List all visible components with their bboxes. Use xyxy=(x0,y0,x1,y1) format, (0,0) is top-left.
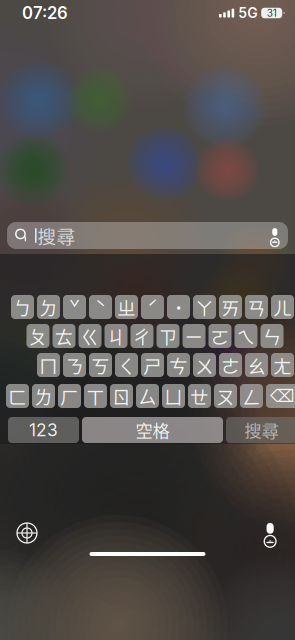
staticText: ㄈ xyxy=(8,382,27,409)
button[interactable]: ㄗ xyxy=(156,324,179,348)
button[interactable]: 空格 xyxy=(82,417,223,443)
button[interactable]: ㄉ xyxy=(37,295,60,319)
staticText: ㄓ xyxy=(117,293,136,320)
button[interactable]: ㄡ xyxy=(214,384,237,408)
button[interactable]: ㄅ xyxy=(11,295,34,319)
button[interactable]: ㄨ xyxy=(193,353,216,377)
staticText: 搜尋 xyxy=(38,222,76,249)
button[interactable]: ㄜ xyxy=(219,353,242,377)
staticText: ˊ xyxy=(147,293,158,320)
button[interactable]: ˋ xyxy=(89,295,112,319)
staticText: ㄤ xyxy=(273,351,292,378)
button[interactable]: ㄘ xyxy=(167,353,190,377)
button[interactable]: 搜尋 xyxy=(226,417,295,443)
button[interactable]: ㄐ xyxy=(104,324,127,348)
staticText: ㄔ xyxy=(132,322,151,349)
button[interactable]: ㄢ xyxy=(245,295,268,319)
button[interactable]: ㄎ xyxy=(89,353,112,377)
staticText: ˇ xyxy=(69,293,80,320)
button[interactable]: ㄒ xyxy=(84,384,107,408)
staticText: ㄉ xyxy=(39,293,58,320)
staticText: ㄏ xyxy=(60,382,79,409)
button[interactable]: ㄕ xyxy=(141,353,164,377)
button[interactable]: ㄈ xyxy=(6,384,29,408)
staticText: ㄕ xyxy=(143,351,162,378)
button[interactable]: ㄛ xyxy=(208,324,231,348)
button[interactable]: ㄑ xyxy=(115,353,138,377)
staticText: ㄨ xyxy=(195,351,214,378)
staticText: ㄖ xyxy=(112,382,131,409)
button[interactable]: ㄋ xyxy=(63,353,86,377)
staticText: ㄢ xyxy=(247,293,266,320)
staticText: ㄙ xyxy=(138,382,157,409)
staticText: ㄍ xyxy=(80,322,99,349)
staticText: ㄅ xyxy=(13,293,32,320)
staticText: ㄑ xyxy=(117,351,136,378)
staticText: 5G xyxy=(238,4,257,21)
staticText: ㄚ xyxy=(195,293,214,320)
staticText: ㄠ xyxy=(247,351,266,378)
staticText: ㄐ xyxy=(106,322,125,349)
button[interactable]: ㄙ xyxy=(136,384,159,408)
button[interactable]: ㄥ xyxy=(240,384,263,408)
staticText: ㄇ xyxy=(39,351,58,378)
staticText: 31 xyxy=(267,7,277,19)
button[interactable]: ㄣ xyxy=(260,324,283,348)
button[interactable]: 搜尋 xyxy=(7,222,288,249)
button[interactable]: ㄤ xyxy=(271,353,294,377)
button[interactable]: ㄦ xyxy=(271,295,294,319)
staticText: ㄒ xyxy=(86,382,105,409)
staticText: ˙ xyxy=(174,293,183,320)
button[interactable]: ㄖ xyxy=(110,384,133,408)
staticText: ㄌ xyxy=(34,382,53,409)
staticText: ⌫ xyxy=(270,386,295,406)
button[interactable]: ˇ xyxy=(63,295,86,319)
staticText: ㄆ xyxy=(28,322,47,349)
staticText: ㄦ xyxy=(273,293,292,320)
staticText: ㄩ xyxy=(164,382,183,409)
staticText: ㄣ xyxy=(262,322,281,349)
button[interactable]: ㄞ xyxy=(219,295,242,319)
button[interactable]: ㄏ xyxy=(58,384,81,408)
staticText: 搜尋 xyxy=(244,417,278,443)
button[interactable]: ㄩ xyxy=(162,384,185,408)
button[interactable]: ㄔ xyxy=(130,324,153,348)
staticText: ㄞ xyxy=(221,293,240,320)
staticText: 123 xyxy=(29,419,58,440)
button[interactable]: ㄊ xyxy=(52,324,75,348)
staticText: ㄥ xyxy=(242,382,261,409)
staticText: ㄜ xyxy=(221,351,240,378)
staticText: ㄎ xyxy=(91,351,110,378)
button[interactable]: ㄌ xyxy=(32,384,55,408)
staticText: 07:26 xyxy=(22,3,68,23)
button[interactable]: ㄆ xyxy=(26,324,49,348)
button[interactable]: ˙ xyxy=(167,295,190,319)
staticText: ㄧ xyxy=(184,322,203,349)
staticText: ㄡ xyxy=(216,382,235,409)
button[interactable]: 123 xyxy=(8,417,79,443)
staticText: ㄝ xyxy=(190,382,209,409)
button[interactable]: ˊ xyxy=(141,295,164,319)
button[interactable]: ㄍ xyxy=(78,324,101,348)
button[interactable]: ㄇ xyxy=(37,353,60,377)
staticText: ㄟ xyxy=(236,322,255,349)
staticText: ㄗ xyxy=(158,322,177,349)
button[interactable]: ㄓ xyxy=(115,295,138,319)
button[interactable]: Delete xyxy=(266,384,295,408)
staticText: ㄊ xyxy=(54,322,73,349)
staticText: 空格 xyxy=(135,417,169,443)
button[interactable]: ㄝ xyxy=(188,384,211,408)
button[interactable]: ㄟ xyxy=(234,324,257,348)
button[interactable]: ㄧ xyxy=(182,324,205,348)
staticText: ˋ xyxy=(95,293,106,320)
staticText: ㄘ xyxy=(169,351,188,378)
button[interactable]: Change keyboard xyxy=(17,523,37,543)
button[interactable]: Dictate xyxy=(264,522,276,543)
staticText: ㄛ xyxy=(210,322,229,349)
staticText: ㄋ xyxy=(65,351,84,378)
button[interactable]: ㄠ xyxy=(245,353,268,377)
button[interactable]: ㄚ xyxy=(193,295,216,319)
